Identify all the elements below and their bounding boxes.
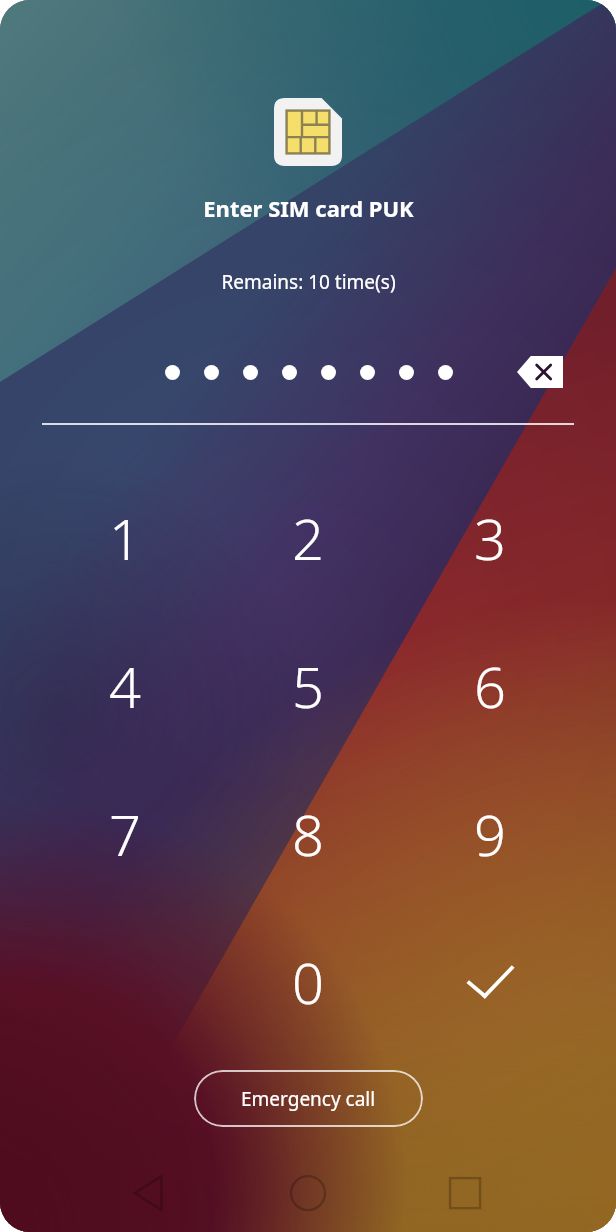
- button[interactable]: 8: [252, 788, 364, 880]
- staticText: 1: [109, 500, 141, 576]
- staticText: 9: [474, 796, 506, 872]
- staticText: 6: [474, 648, 506, 724]
- button[interactable]: 5: [252, 640, 364, 732]
- staticText: 3: [474, 500, 506, 576]
- button[interactable]: 0: [252, 936, 364, 1028]
- staticText: 7: [109, 796, 141, 872]
- button[interactable]: 7: [69, 788, 181, 880]
- staticText: 2: [292, 500, 324, 576]
- staticText: 4: [109, 648, 141, 724]
- button[interactable]: Confirm: [434, 936, 546, 1028]
- staticText: Enter SIM card PUK: [203, 193, 414, 223]
- staticText: Emergency call: [241, 1086, 376, 1112]
- staticText: 0: [292, 944, 324, 1020]
- staticText: Remains: 10 time(s): [221, 269, 396, 295]
- staticText: 8: [292, 796, 324, 872]
- button[interactable]: 1: [69, 492, 181, 584]
- button[interactable]: 3: [434, 492, 546, 584]
- button[interactable]: Backspace: [508, 350, 572, 394]
- button[interactable]: 2: [252, 492, 364, 584]
- button[interactable]: 9: [434, 788, 546, 880]
- button[interactable]: 6: [434, 640, 546, 732]
- staticText: 5: [292, 648, 324, 724]
- button[interactable]: 4: [69, 640, 181, 732]
- button[interactable]: Emergency call: [194, 1070, 423, 1127]
